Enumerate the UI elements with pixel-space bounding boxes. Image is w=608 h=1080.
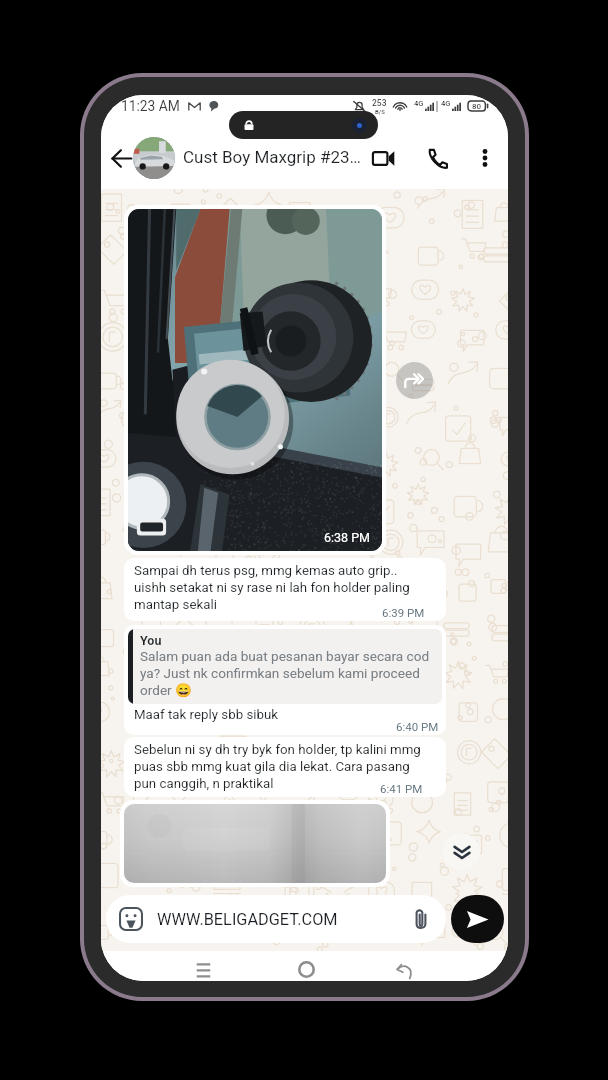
staticText: 6:41 PM [380,782,423,795]
button[interactable]: Scroll to bottom [443,833,480,870]
staticText: B/S [375,108,385,115]
staticText: 6:40 PM [396,720,439,733]
button[interactable]: Voice call [420,141,454,175]
button[interactable]: Sampai dh terus psg, mmg kemas auto grip… [124,558,446,621]
button[interactable]: Forward [396,362,433,399]
staticText: WWW.BELIGADGET.COM [157,910,410,929]
staticText: Maaf tak reply sbb sibuk [134,707,279,723]
button[interactable]: Back [389,962,421,981]
staticText: 11:23 AM [121,98,180,114]
staticText: 80 [472,102,482,111]
button[interactable]: Recents [187,962,219,981]
staticText: 6:39 PM [382,606,425,619]
button[interactable]: Back [104,141,138,175]
button[interactable]: Cust Boy Maxgrip #23… [183,147,373,167]
staticText: You [140,633,162,648]
button[interactable]: Video call [365,140,401,176]
button[interactable]: Profile photo [133,137,175,179]
button[interactable] [124,804,386,883]
staticText: 253 [372,98,387,108]
staticText: Salam puan ada buat pesanan bayar secara… [140,648,436,698]
button[interactable]: You [124,625,446,735]
button[interactable]: More options [470,143,500,173]
staticText: 6:38 PM [324,530,371,545]
button[interactable]: Sebelun ni sy dh try byk fon holder, tp … [124,737,446,797]
staticText: 4G [414,99,424,108]
staticText: 4G [441,99,451,108]
button[interactable]: WWW.BELIGADGET.COM [119,895,432,943]
staticText: Sampai dh terus psg, mmg kemas auto grip… [134,563,432,612]
button[interactable]: 6:38 PM [128,209,382,551]
button[interactable]: Send [451,895,504,943]
button[interactable]: Home [290,961,322,981]
staticText: Sebelun ni sy dh try byk fon holder, tp … [134,742,430,791]
